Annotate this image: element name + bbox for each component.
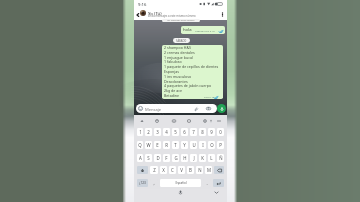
- button[interactable]: .: [203, 179, 211, 187]
- button[interactable]: Y: [181, 141, 188, 149]
- staticText: G: [174, 155, 178, 161]
- staticText: 4 paquetes de jabón cuerpo: [164, 83, 212, 88]
- staticText: F: [165, 155, 168, 161]
- button[interactable]: 0: [217, 128, 224, 136]
- button[interactable]: [137, 166, 148, 174]
- staticText: E: [156, 142, 159, 148]
- staticText: Y: [183, 142, 186, 148]
- button[interactable]: M: [205, 166, 212, 174]
- staticText: 4: [165, 129, 168, 135]
- button[interactable]: Emoji: [136, 104, 217, 113]
- staticText: 0: [219, 129, 222, 135]
- button[interactable]: Settings: [203, 119, 207, 123]
- other: Attach: [194, 107, 198, 111]
- staticText: P: [219, 142, 222, 148]
- button[interactable]: Voice: [209, 119, 213, 123]
- staticText: 3: [156, 129, 159, 135]
- button[interactable]: ¿123: [137, 179, 148, 187]
- button[interactable]: [214, 166, 224, 174]
- button[interactable]: [213, 179, 224, 187]
- button[interactable]: 1: [137, 128, 143, 136]
- button[interactable]: Q: [137, 141, 143, 149]
- button[interactable]: Clipboard: [140, 119, 144, 123]
- button[interactable]: W: [145, 141, 152, 149]
- button[interactable]: J: [190, 154, 197, 162]
- staticText: O: [210, 142, 214, 148]
- button[interactable]: R: [163, 141, 170, 149]
- staticText: R: [165, 142, 168, 148]
- button[interactable]: K: [199, 154, 206, 162]
- other: Voice input: [178, 190, 183, 195]
- button[interactable]: A: [137, 154, 143, 162]
- button[interactable]: F: [163, 154, 170, 162]
- staticText: U: [192, 142, 196, 148]
- staticText: C: [171, 167, 174, 173]
- staticText: X: [162, 167, 165, 173]
- staticText: ¿123: [139, 181, 146, 185]
- staticText: 1 enjuague bucal: [164, 55, 193, 60]
- other: Emoji: [138, 106, 143, 111]
- button[interactable]: 6: [181, 128, 188, 136]
- button[interactable]: Voice message: [217, 104, 226, 113]
- staticText: 2 cremas dentales: [164, 50, 195, 55]
- staticText: H: [183, 155, 187, 161]
- button[interactable]: S: [145, 154, 152, 162]
- button[interactable]: 7: [190, 128, 197, 136]
- staticText: Z: [153, 167, 156, 173]
- staticText: Desodorantes: [164, 79, 188, 84]
- button[interactable]: O: [208, 141, 215, 149]
- staticText: 8: [201, 129, 204, 135]
- button[interactable]: V: [178, 166, 185, 174]
- staticText: Yo (Tú): [148, 10, 162, 16]
- button[interactable]: H: [181, 154, 188, 162]
- staticText: L: [210, 155, 213, 161]
- staticText: ,: [153, 180, 155, 186]
- button[interactable]: GIF: [172, 119, 176, 123]
- button[interactable]: 3: [154, 128, 161, 136]
- staticText: 1 fabuloso: [164, 59, 182, 64]
- staticText: Q: [138, 142, 142, 148]
- staticText: 2 shampoo H&S: [164, 45, 192, 50]
- staticText: 1 paquete de cepillos de dientes: [164, 64, 219, 69]
- staticText: K: [201, 155, 204, 161]
- button[interactable]: I: [199, 141, 206, 149]
- button[interactable]: C: [169, 166, 176, 174]
- button[interactable]: Back: [134, 9, 227, 20]
- button[interactable]: U: [190, 141, 197, 149]
- staticText: V: [180, 167, 183, 173]
- staticText: J: [193, 155, 195, 161]
- staticText: Cabezal 9:04 a. m.: [195, 29, 216, 32]
- button[interactable]: Emoji: [155, 119, 159, 123]
- button[interactable]: T: [172, 141, 179, 149]
- button[interactable]: D: [154, 154, 161, 162]
- button[interactable]: More: [217, 119, 221, 123]
- button[interactable]: 8: [199, 128, 206, 136]
- button[interactable]: P: [217, 141, 224, 149]
- staticText: Esponjas: [164, 69, 179, 74]
- button[interactable]: Stickers: [187, 119, 191, 123]
- staticText: 9:05 a. m.: [204, 95, 215, 98]
- button[interactable]: ,: [150, 179, 158, 187]
- staticText: 9:16: [138, 2, 147, 8]
- button[interactable]: E: [154, 141, 161, 149]
- button[interactable]: X: [160, 166, 167, 174]
- staticText: .: [206, 180, 208, 186]
- button[interactable]: Z: [150, 166, 158, 174]
- staticText: M: [207, 167, 211, 173]
- button[interactable]: B: [187, 166, 194, 174]
- staticText: 2kg de ace: [164, 88, 183, 93]
- button[interactable]: Ñ: [217, 154, 224, 162]
- button[interactable]: 2: [145, 128, 152, 136]
- staticText: 6: [183, 129, 186, 135]
- staticText: I: [202, 142, 204, 148]
- button[interactable]: N: [196, 166, 203, 174]
- button[interactable]: 4: [163, 128, 170, 136]
- button[interactable]: G: [172, 154, 179, 162]
- staticText: N: [198, 167, 202, 173]
- staticText: SÁBADO: [176, 39, 187, 43]
- button[interactable]: Español: [160, 179, 201, 187]
- staticText: Ñ: [219, 155, 223, 161]
- button[interactable]: L: [208, 154, 215, 162]
- button[interactable]: 9: [208, 128, 215, 136]
- button[interactable]: 5: [172, 128, 179, 136]
